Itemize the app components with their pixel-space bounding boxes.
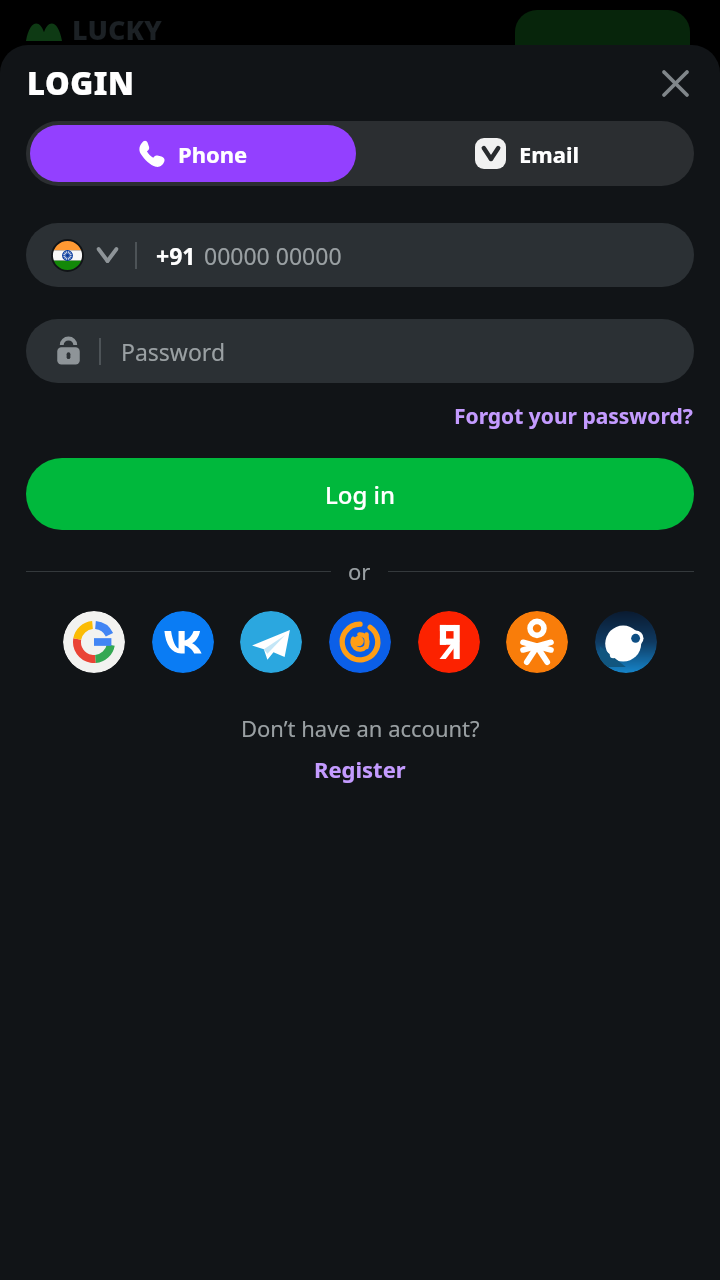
button[interactable]: Close: [652, 60, 698, 106]
staticText: Phone: [178, 139, 248, 169]
staticText: Password: [121, 336, 226, 367]
button[interactable]: Sign in with Steam: [595, 611, 657, 673]
staticText: Email: [519, 139, 580, 169]
button[interactable]: Sign in with Yandex: [418, 611, 480, 673]
staticText: Don’t have an account?: [241, 713, 480, 743]
staticText: +91: [156, 240, 196, 271]
staticText: Forgot your password?: [454, 402, 693, 431]
button[interactable]: Sign in with Odnoklassniki: [506, 611, 568, 673]
button[interactable]: Log in: [26, 458, 694, 530]
button[interactable]: Password: [26, 319, 694, 383]
button[interactable]: Sign in with VK: [152, 611, 214, 673]
button[interactable]: Sign in with Telegram: [240, 611, 302, 673]
button[interactable]: Sign in with Mail.ru: [329, 611, 391, 673]
button[interactable]: Register: [304, 752, 416, 786]
staticText: LUCKY: [72, 11, 162, 48]
staticText: Log in: [325, 478, 396, 511]
button[interactable]: Sign in with Google: [63, 611, 125, 673]
staticText: Register: [314, 754, 406, 784]
staticText: 00000 00000: [204, 240, 342, 271]
staticText: or: [348, 556, 371, 586]
button[interactable]: Email: [360, 121, 694, 186]
button[interactable]: +91: [26, 223, 694, 287]
button[interactable]: Phone: [30, 125, 356, 182]
button[interactable]: Forgot your password?: [451, 397, 696, 436]
staticText: LOGIN: [27, 62, 135, 104]
